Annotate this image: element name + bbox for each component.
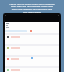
button[interactable]	[5, 44, 59, 55]
staticText: Never not be what other your headline Pl…	[4, 2, 60, 14]
button[interactable]	[5, 33, 59, 44]
button[interactable]	[5, 66, 59, 72]
button[interactable]	[5, 55, 59, 66]
